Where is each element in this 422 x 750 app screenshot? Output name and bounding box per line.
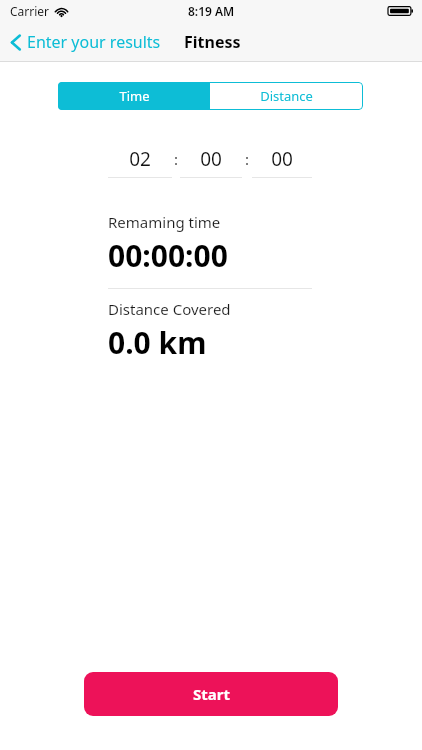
staticText: Remaming time [108, 212, 221, 232]
staticText: 00 [271, 146, 293, 172]
staticText: Enter your results [27, 31, 161, 53]
button[interactable]: 00 [180, 146, 242, 172]
button[interactable]: 00 [252, 146, 312, 172]
button[interactable]: 02 [108, 146, 172, 172]
staticText: 02 [129, 146, 151, 172]
button[interactable]: Distance [210, 82, 363, 110]
staticText: Distance Covered [108, 299, 231, 319]
staticText: 8:19 AM [188, 3, 235, 19]
staticText: 00:00:00 [108, 235, 228, 276]
button[interactable]: Start [84, 672, 338, 716]
staticText: Time [119, 87, 150, 105]
staticText: 00 [200, 146, 222, 172]
staticText: Start [193, 684, 230, 704]
staticText: Carrier [10, 3, 50, 19]
staticText: : [174, 149, 179, 169]
button[interactable]: Time [58, 82, 210, 110]
staticText: Fitness [184, 31, 241, 53]
staticText: Distance [260, 87, 313, 105]
button[interactable]: Enter your results [0, 27, 167, 57]
staticText: : [245, 149, 250, 169]
staticText: 0.0 km [108, 322, 207, 363]
